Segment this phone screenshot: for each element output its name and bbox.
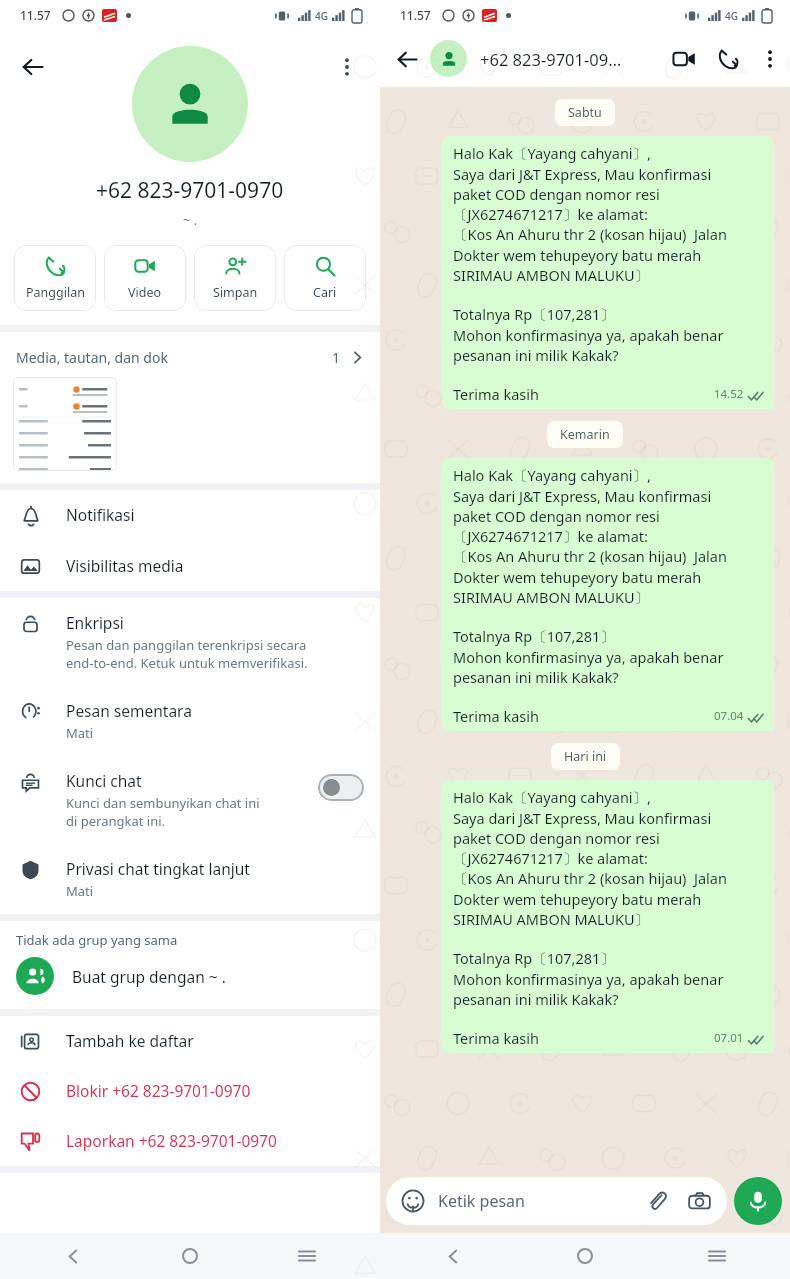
staticText: Enkripsi [66, 612, 124, 633]
button[interactable]: Tambah ke daftar [0, 1016, 380, 1066]
staticText: +62 823-9701-09… [480, 48, 622, 70]
staticText: Video [128, 284, 162, 301]
button[interactable]: Attach [643, 1187, 671, 1215]
button[interactable]: Halo Kak〔Yayang cahyani〕, Saya dari J&T … [442, 136, 774, 409]
staticText: Terima kasih [453, 1028, 539, 1048]
button[interactable]: Enkripsi [0, 598, 380, 686]
staticText: Privasi chat tingkat lanjut [66, 858, 250, 879]
staticText: Ketik pesan [438, 1190, 525, 1212]
button[interactable]: Back [380, 30, 790, 87]
button[interactable]: Back [10, 44, 56, 90]
staticText: Halo Kak〔Yayang cahyani〕, Saya dari J&T … [453, 787, 712, 868]
button[interactable]: Back [55, 1238, 91, 1274]
staticText: ~ . [183, 211, 198, 229]
staticText: Halo Kak〔Yayang cahyani〕, Saya dari J&T … [453, 465, 712, 546]
staticText: 07.04 [714, 708, 744, 724]
staticText: 4G [315, 9, 328, 23]
staticText: Cari [313, 284, 337, 301]
staticText: Totalnya Rp〔107,281〕 Mohon konfirmasinya… [453, 948, 724, 1009]
staticText: Kemarin [560, 426, 610, 443]
button[interactable]: Recents [699, 1238, 735, 1274]
staticText: Visibilitas media [66, 555, 184, 576]
staticText: Hari ini [564, 748, 607, 765]
staticText: +62 823-9701-0970 [96, 176, 284, 205]
staticText: Kunci chat [66, 770, 142, 791]
staticText: 11.57 [400, 7, 431, 23]
button[interactable]: Home [567, 1238, 603, 1274]
staticText: Pesan dan panggilan terenkripsi secara e… [66, 636, 308, 672]
button[interactable]: Video call [662, 37, 706, 81]
button[interactable]: Simpan [194, 245, 276, 311]
staticText: 1 [332, 348, 341, 367]
staticText: Tambah ke daftar [66, 1030, 194, 1051]
button[interactable]: Kunci chat [0, 756, 380, 844]
button[interactable]: Camera [685, 1187, 713, 1215]
staticText: Totalnya Rp〔107,281〕 Mohon konfirmasinya… [453, 626, 724, 687]
staticText: Laporkan +62 823-9701-0970 [66, 1130, 277, 1151]
staticText: Buat grup dengan ~ . [72, 966, 226, 987]
button[interactable]: Pesan sementara [0, 686, 380, 756]
button[interactable]: Voice call [706, 37, 750, 81]
staticText: Blokir +62 823-9701-0970 [66, 1080, 251, 1101]
staticText: 14.52 [714, 386, 744, 402]
staticText: 〔Kos An Ahuru thr 2 (kosan hijau) Jalan … [453, 868, 727, 929]
staticText: Kunci dan sembunyikan chat ini di perang… [66, 794, 260, 830]
button[interactable]: Media, tautan, dan dok [0, 332, 380, 483]
button[interactable]: Back [435, 1238, 471, 1274]
button[interactable]: Video [104, 245, 186, 311]
staticText: Pesan sementara [66, 700, 192, 721]
button[interactable]: Buat grup dengan ~ . [0, 949, 380, 1009]
staticText: 4G [725, 9, 738, 23]
staticText: Halo Kak〔Yayang cahyani〕, Saya dari J&T … [453, 143, 712, 224]
button[interactable]: Halo Kak〔Yayang cahyani〕, Saya dari J&T … [442, 458, 774, 731]
button[interactable]: Halo Kak〔Yayang cahyani〕, Saya dari J&T … [442, 780, 774, 1053]
button[interactable]: Emoji [386, 1177, 727, 1225]
button[interactable]: Laporkan +62 823-9701-0970 [0, 1116, 380, 1166]
staticText: Notifikasi [66, 504, 135, 525]
staticText: Simpan [213, 284, 258, 301]
staticText: Terima kasih [453, 706, 539, 726]
staticText: Mati [66, 882, 94, 900]
button[interactable]: Blokir +62 823-9701-0970 [0, 1066, 380, 1116]
button[interactable]: Privasi chat tingkat lanjut [0, 844, 380, 914]
staticText: Media, tautan, dan dok [16, 348, 168, 367]
staticText: Tidak ada grup yang sama [16, 931, 178, 949]
staticText: Sabtu [568, 104, 602, 121]
button[interactable]: Home [172, 1238, 208, 1274]
button[interactable]: Media [13, 377, 117, 471]
button[interactable]: Back [386, 38, 428, 80]
button[interactable]: Notifikasi [0, 490, 380, 541]
staticText: Totalnya Rp〔107,281〕 Mohon konfirmasinya… [453, 304, 724, 365]
button[interactable]: Cari [284, 245, 366, 311]
staticText: 〔Kos An Ahuru thr 2 (kosan hijau) Jalan … [453, 546, 727, 607]
staticText: 11.57 [20, 7, 51, 23]
button[interactable]: Voice message [734, 1177, 782, 1225]
staticText: Mati [66, 724, 94, 742]
staticText: Panggilan [26, 284, 85, 301]
staticText: 〔Kos An Ahuru thr 2 (kosan hijau) Jalan … [453, 224, 727, 285]
button[interactable]: Panggilan [14, 245, 96, 311]
button[interactable]: Emoji [400, 1188, 426, 1214]
staticText: 07.01 [714, 1030, 744, 1046]
staticText: Terima kasih [453, 384, 539, 404]
button[interactable]: Visibilitas media [0, 541, 380, 591]
button[interactable]: More options [750, 39, 790, 79]
button[interactable]: Kunci chat toggle [318, 774, 364, 801]
button[interactable]: More options [324, 44, 370, 90]
button[interactable]: Recents [289, 1238, 325, 1274]
